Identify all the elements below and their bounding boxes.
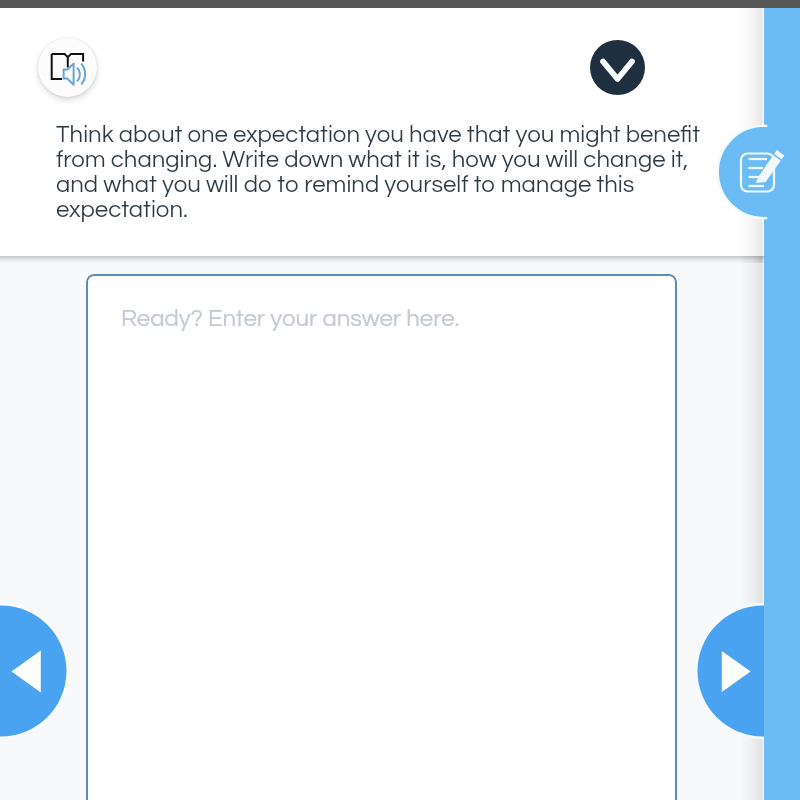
button[interactable]: Read aloud xyxy=(38,38,97,97)
staticText: Ready? Enter your answer here. xyxy=(121,306,460,331)
button[interactable]: Next xyxy=(694,602,800,740)
button[interactable]: Collapse xyxy=(590,40,645,95)
button[interactable]: Previous xyxy=(0,602,70,740)
staticText: Think about one expectation you have tha… xyxy=(56,122,706,222)
button[interactable]: Notes xyxy=(717,125,800,219)
button[interactable]: Notes panel xyxy=(764,0,800,800)
button[interactable]: Ready? Enter your answer here. xyxy=(86,274,677,800)
